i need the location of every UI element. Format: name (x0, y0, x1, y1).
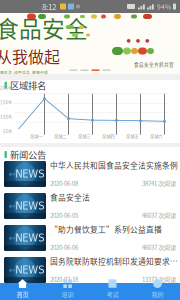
staticText: 考试 (106, 290, 118, 298)
staticText: 50K (3, 128, 12, 135)
staticText: NEWS (15, 200, 44, 212)
staticText: 食品安全齐抓共管 (134, 61, 174, 68)
staticText: 94% (157, 2, 171, 11)
staticText: 新华 (9, 203, 15, 208)
staticText: 我的 (151, 290, 163, 298)
staticText: “助力餐饮复工”系列公益直播 (50, 223, 162, 235)
staticText: 食品安全法 (50, 191, 90, 203)
staticText: 新闻公告 (10, 148, 46, 161)
staticText: 国务院联防联控机制印发通知要求切实... (50, 255, 180, 267)
staticText: 2020-06-06 (50, 243, 78, 252)
staticText: NEWS (15, 264, 44, 276)
staticText: 200K (0, 84, 12, 91)
staticText: 区域六 (150, 134, 162, 140)
staticText: 8:12 (42, 1, 56, 12)
staticText: 新华 (9, 171, 15, 176)
button[interactable]: 新华 (0, 254, 180, 286)
button[interactable]: 新华 (0, 158, 180, 190)
staticText: 区域五 (126, 134, 138, 140)
staticText: 46037 次阅读 (142, 243, 176, 252)
staticText: 健康生活 绿色食品 健康中国 (0, 70, 48, 75)
button[interactable]: 新华 (0, 190, 180, 222)
staticText: 2020-02-18 (50, 275, 78, 284)
staticText: 100K (0, 113, 12, 120)
staticText: NEWS (15, 168, 44, 180)
staticText: 培训 (61, 290, 73, 298)
button[interactable]: 培训 (45, 283, 90, 300)
staticText: 2020-06-05 (50, 211, 78, 220)
staticText: 2020-06-08 (50, 179, 78, 188)
staticText: 从我做起 (0, 44, 60, 68)
staticText: NEWS (15, 232, 44, 244)
staticText: 首页 (16, 290, 28, 298)
staticText: 健康生活，文明餐桌 (0, 77, 32, 83)
staticText: 中华人民共和国食品安全法实施条例 (50, 159, 178, 171)
staticText: 区域三 (78, 134, 90, 140)
staticText: 新华 (9, 235, 15, 240)
staticText: 13373 次阅读 (142, 275, 176, 284)
button[interactable]: 新华 (0, 222, 180, 254)
button[interactable]: 我的 (135, 283, 180, 300)
button[interactable]: 考试 (90, 283, 135, 300)
staticText: 区域四 (102, 134, 114, 140)
staticText: 新华 (9, 267, 15, 272)
button[interactable]: 首页 (0, 283, 45, 300)
staticText: 食品安全 (0, 11, 88, 44)
staticText: 38741 次阅读 (142, 179, 176, 188)
staticText: 区域二 (54, 134, 66, 140)
staticText: 46037 次阅读 (142, 211, 176, 220)
staticText: 区域排名 (10, 78, 46, 92)
staticText: 150K (0, 99, 12, 105)
staticText: 区域一 (30, 134, 42, 140)
staticText: 食品 (124, 19, 176, 60)
